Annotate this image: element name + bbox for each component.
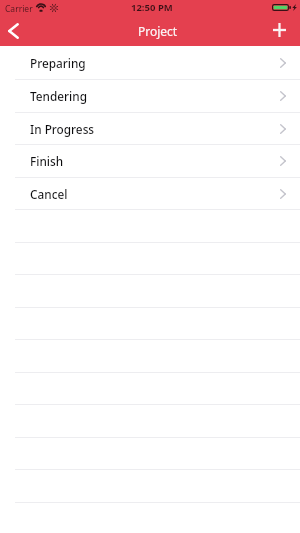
staticText: In Progress [30,121,95,137]
button[interactable]: Add [268,20,300,46]
staticText: Cancel [30,186,68,202]
staticText: Finish [30,153,64,169]
staticText: Carrier [5,3,33,15]
staticText: Project [138,23,178,39]
button[interactable]: Preparing [0,46,300,79]
button[interactable]: Finish [0,145,300,177]
staticText: 12:50 PM [131,1,173,14]
button[interactable]: Back [0,20,28,46]
button[interactable]: Tendering [0,80,300,112]
button[interactable]: In Progress [0,113,300,144]
button[interactable]: Cancel [0,178,300,209]
staticText: Preparing [30,55,86,71]
staticText: Tendering [30,88,87,104]
